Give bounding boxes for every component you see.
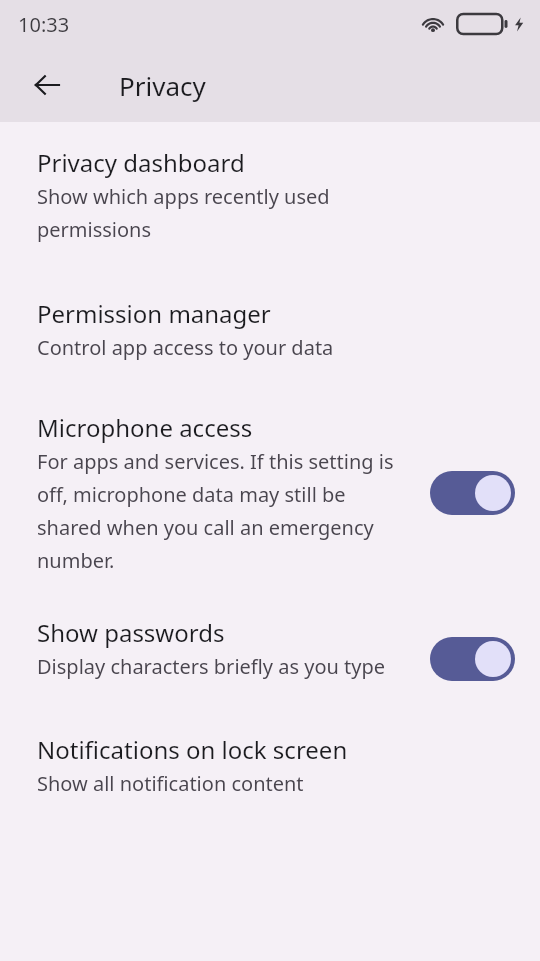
- button[interactable]: Notifications on lock screen: [0, 733, 540, 797]
- button[interactable]: Toggle Show passwords: [430, 637, 515, 681]
- staticText: Show passwords: [37, 616, 225, 649]
- staticText: Show all notification content: [37, 770, 477, 797]
- staticText: Notifications on lock screen: [37, 733, 348, 766]
- staticText: Control app access to your data: [37, 334, 467, 361]
- staticText: 10:33: [18, 11, 70, 38]
- button[interactable]: Back: [19, 57, 75, 113]
- staticText: For apps and services. If this setting i…: [37, 448, 412, 574]
- button[interactable]: Show passwords: [0, 616, 540, 681]
- staticText: Permission manager: [37, 297, 271, 330]
- staticText: Privacy: [119, 68, 206, 103]
- staticText: Show which apps recently used permission…: [37, 183, 437, 243]
- staticText: Privacy dashboard: [37, 146, 245, 179]
- button[interactable]: Microphone access: [0, 411, 540, 574]
- staticText: Microphone access: [37, 411, 253, 444]
- button[interactable]: Privacy dashboard: [0, 146, 540, 243]
- button[interactable]: Toggle Microphone access: [430, 471, 515, 515]
- button[interactable]: Permission manager: [0, 297, 540, 361]
- staticText: Display characters briefly as you type: [37, 653, 412, 680]
